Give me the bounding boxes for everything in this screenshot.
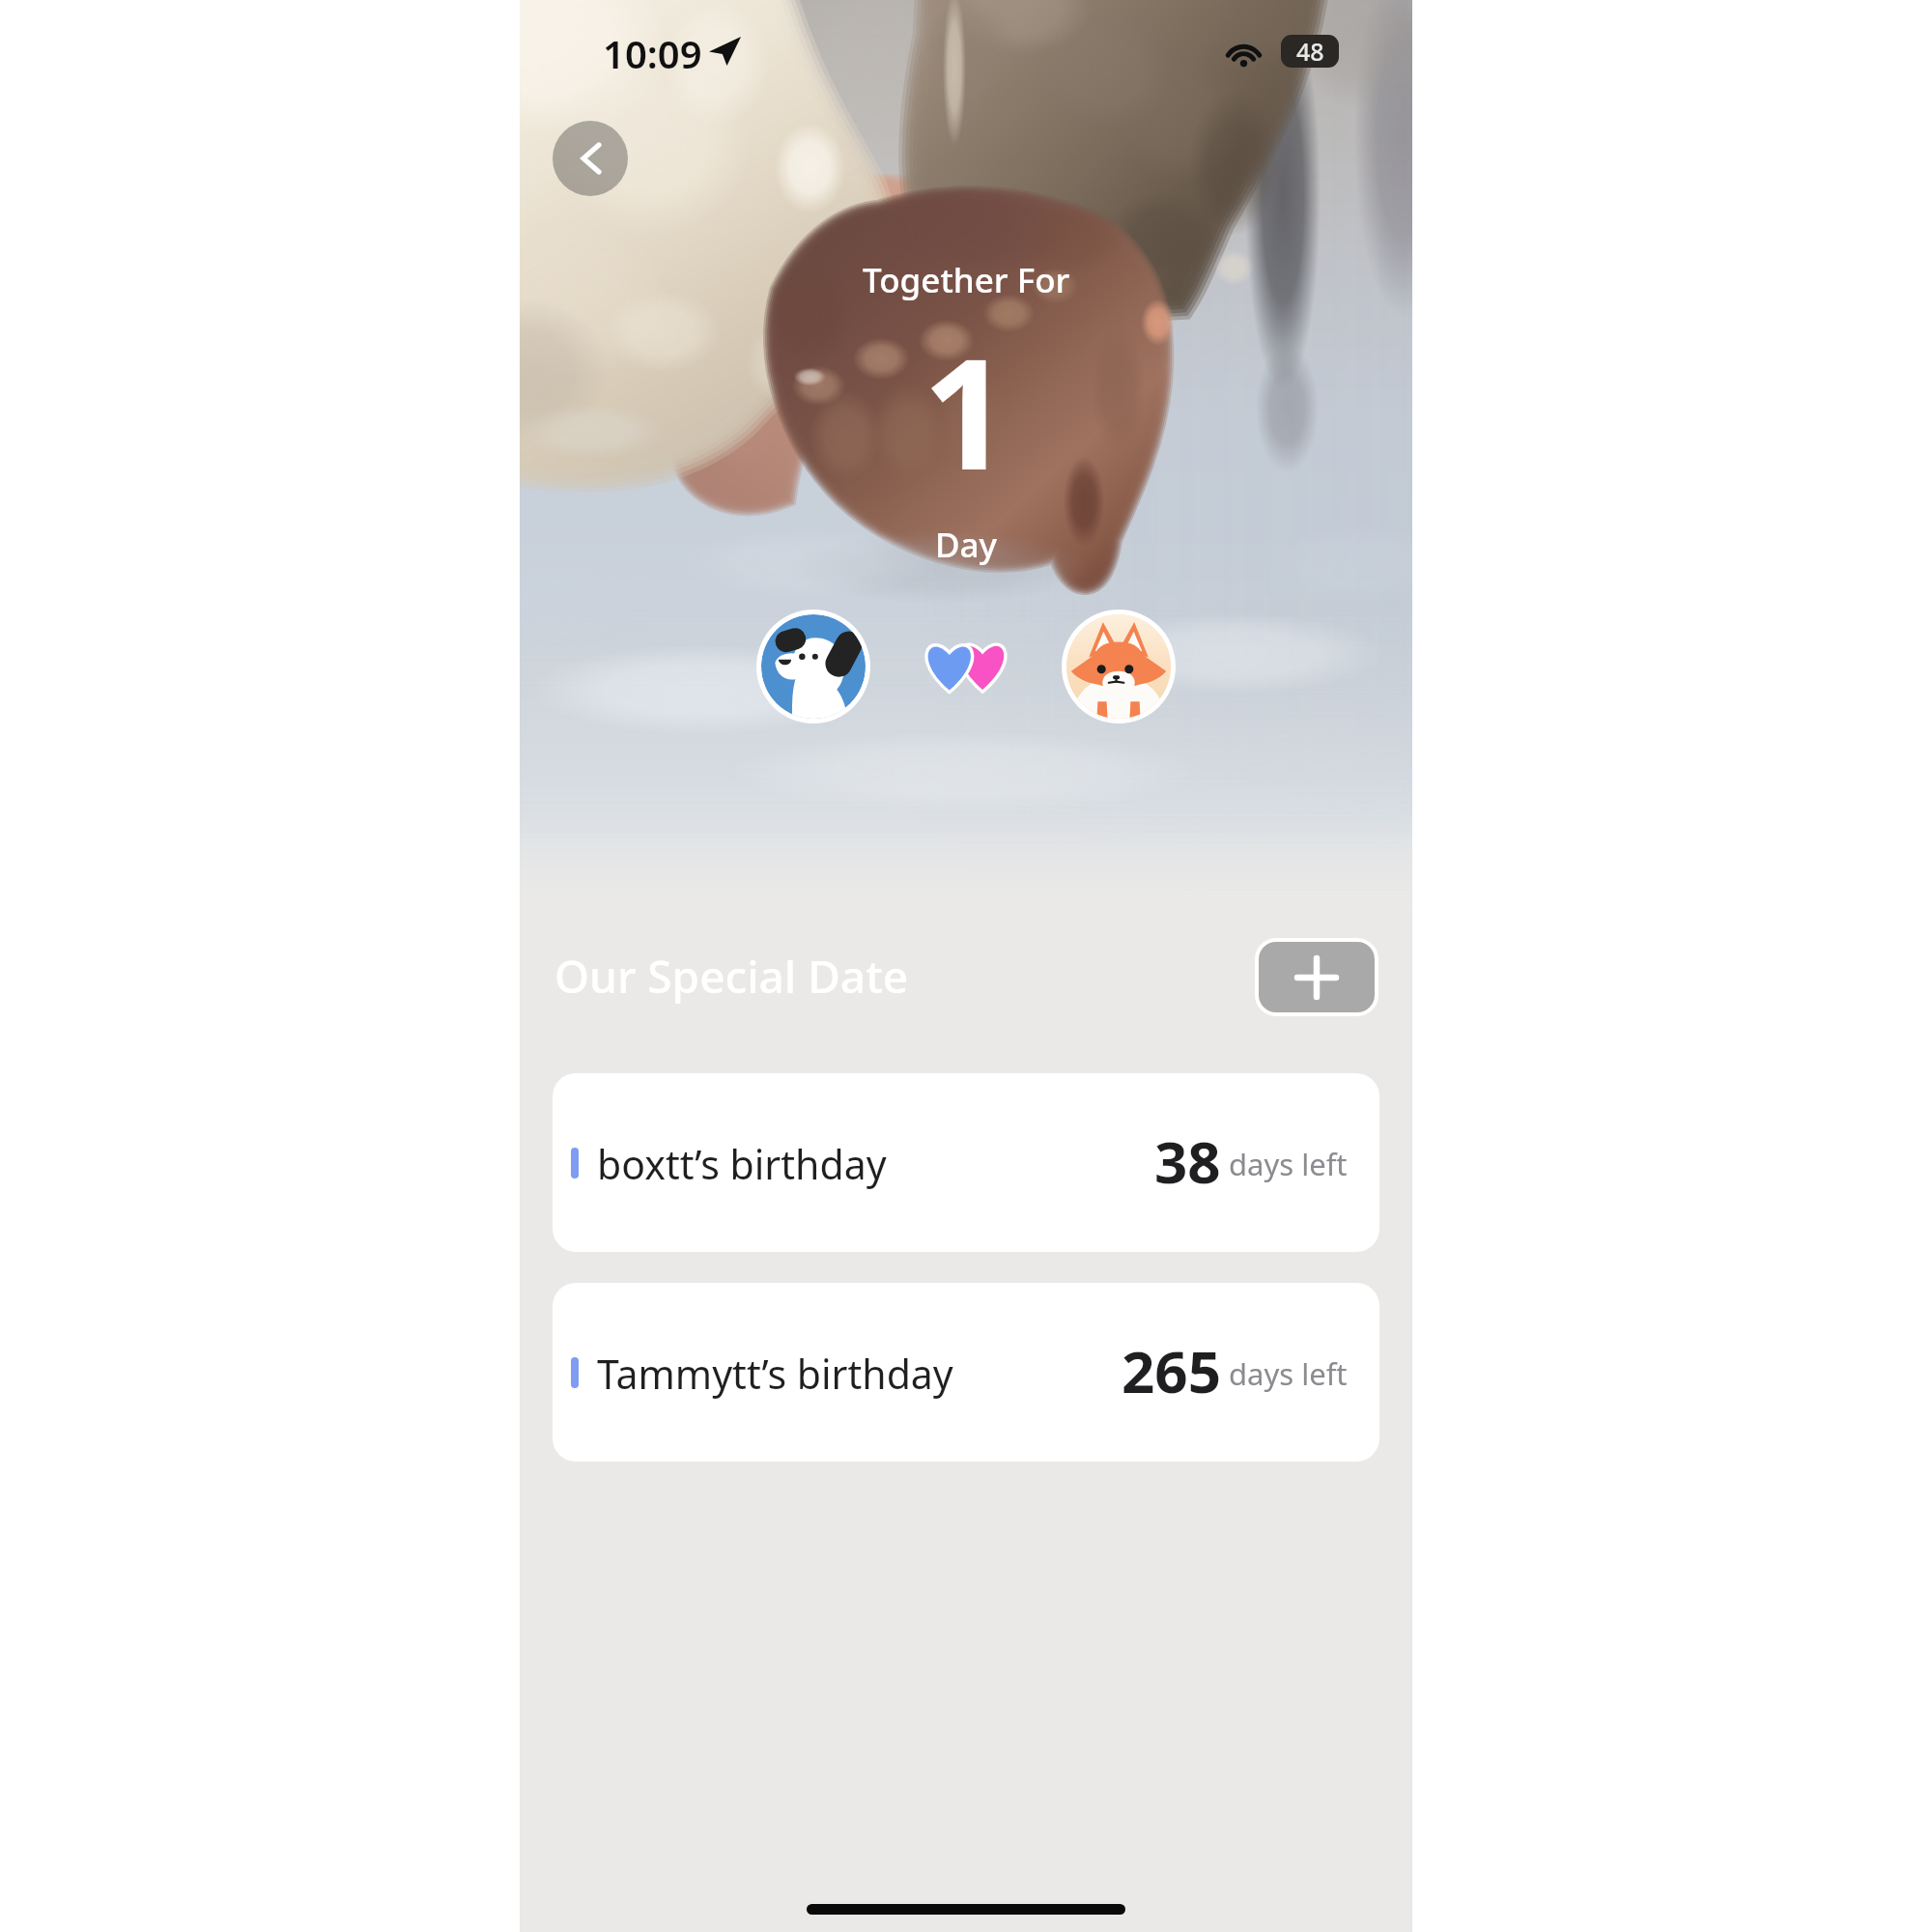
staticText: Together For <box>863 257 1070 303</box>
staticText: 38 <box>1154 1122 1221 1201</box>
button[interactable]: boxtt’s birthday <box>553 1073 1379 1252</box>
staticText: 265 <box>1122 1331 1221 1410</box>
staticText: days left <box>1229 1353 1348 1394</box>
button[interactable]: Tammytt’s birthday <box>553 1283 1379 1462</box>
staticText: 1 <box>923 306 1010 514</box>
button[interactable]: Relationship hearts <box>916 641 1016 692</box>
staticText: Our Special Date <box>554 946 909 1007</box>
button[interactable]: Back <box>553 121 628 196</box>
staticText: Tammytt’s birthday <box>597 1347 953 1401</box>
button[interactable]: Partner 1 avatar <box>756 610 870 724</box>
button[interactable]: Partner 2 avatar <box>1062 610 1176 724</box>
staticText: 10:09 <box>603 27 702 79</box>
staticText: boxtt’s birthday <box>597 1137 887 1191</box>
button[interactable]: Add special date <box>1259 942 1375 1012</box>
staticText: days left <box>1229 1144 1348 1184</box>
staticText: 48 <box>1296 35 1324 68</box>
staticText: Day <box>935 522 998 568</box>
